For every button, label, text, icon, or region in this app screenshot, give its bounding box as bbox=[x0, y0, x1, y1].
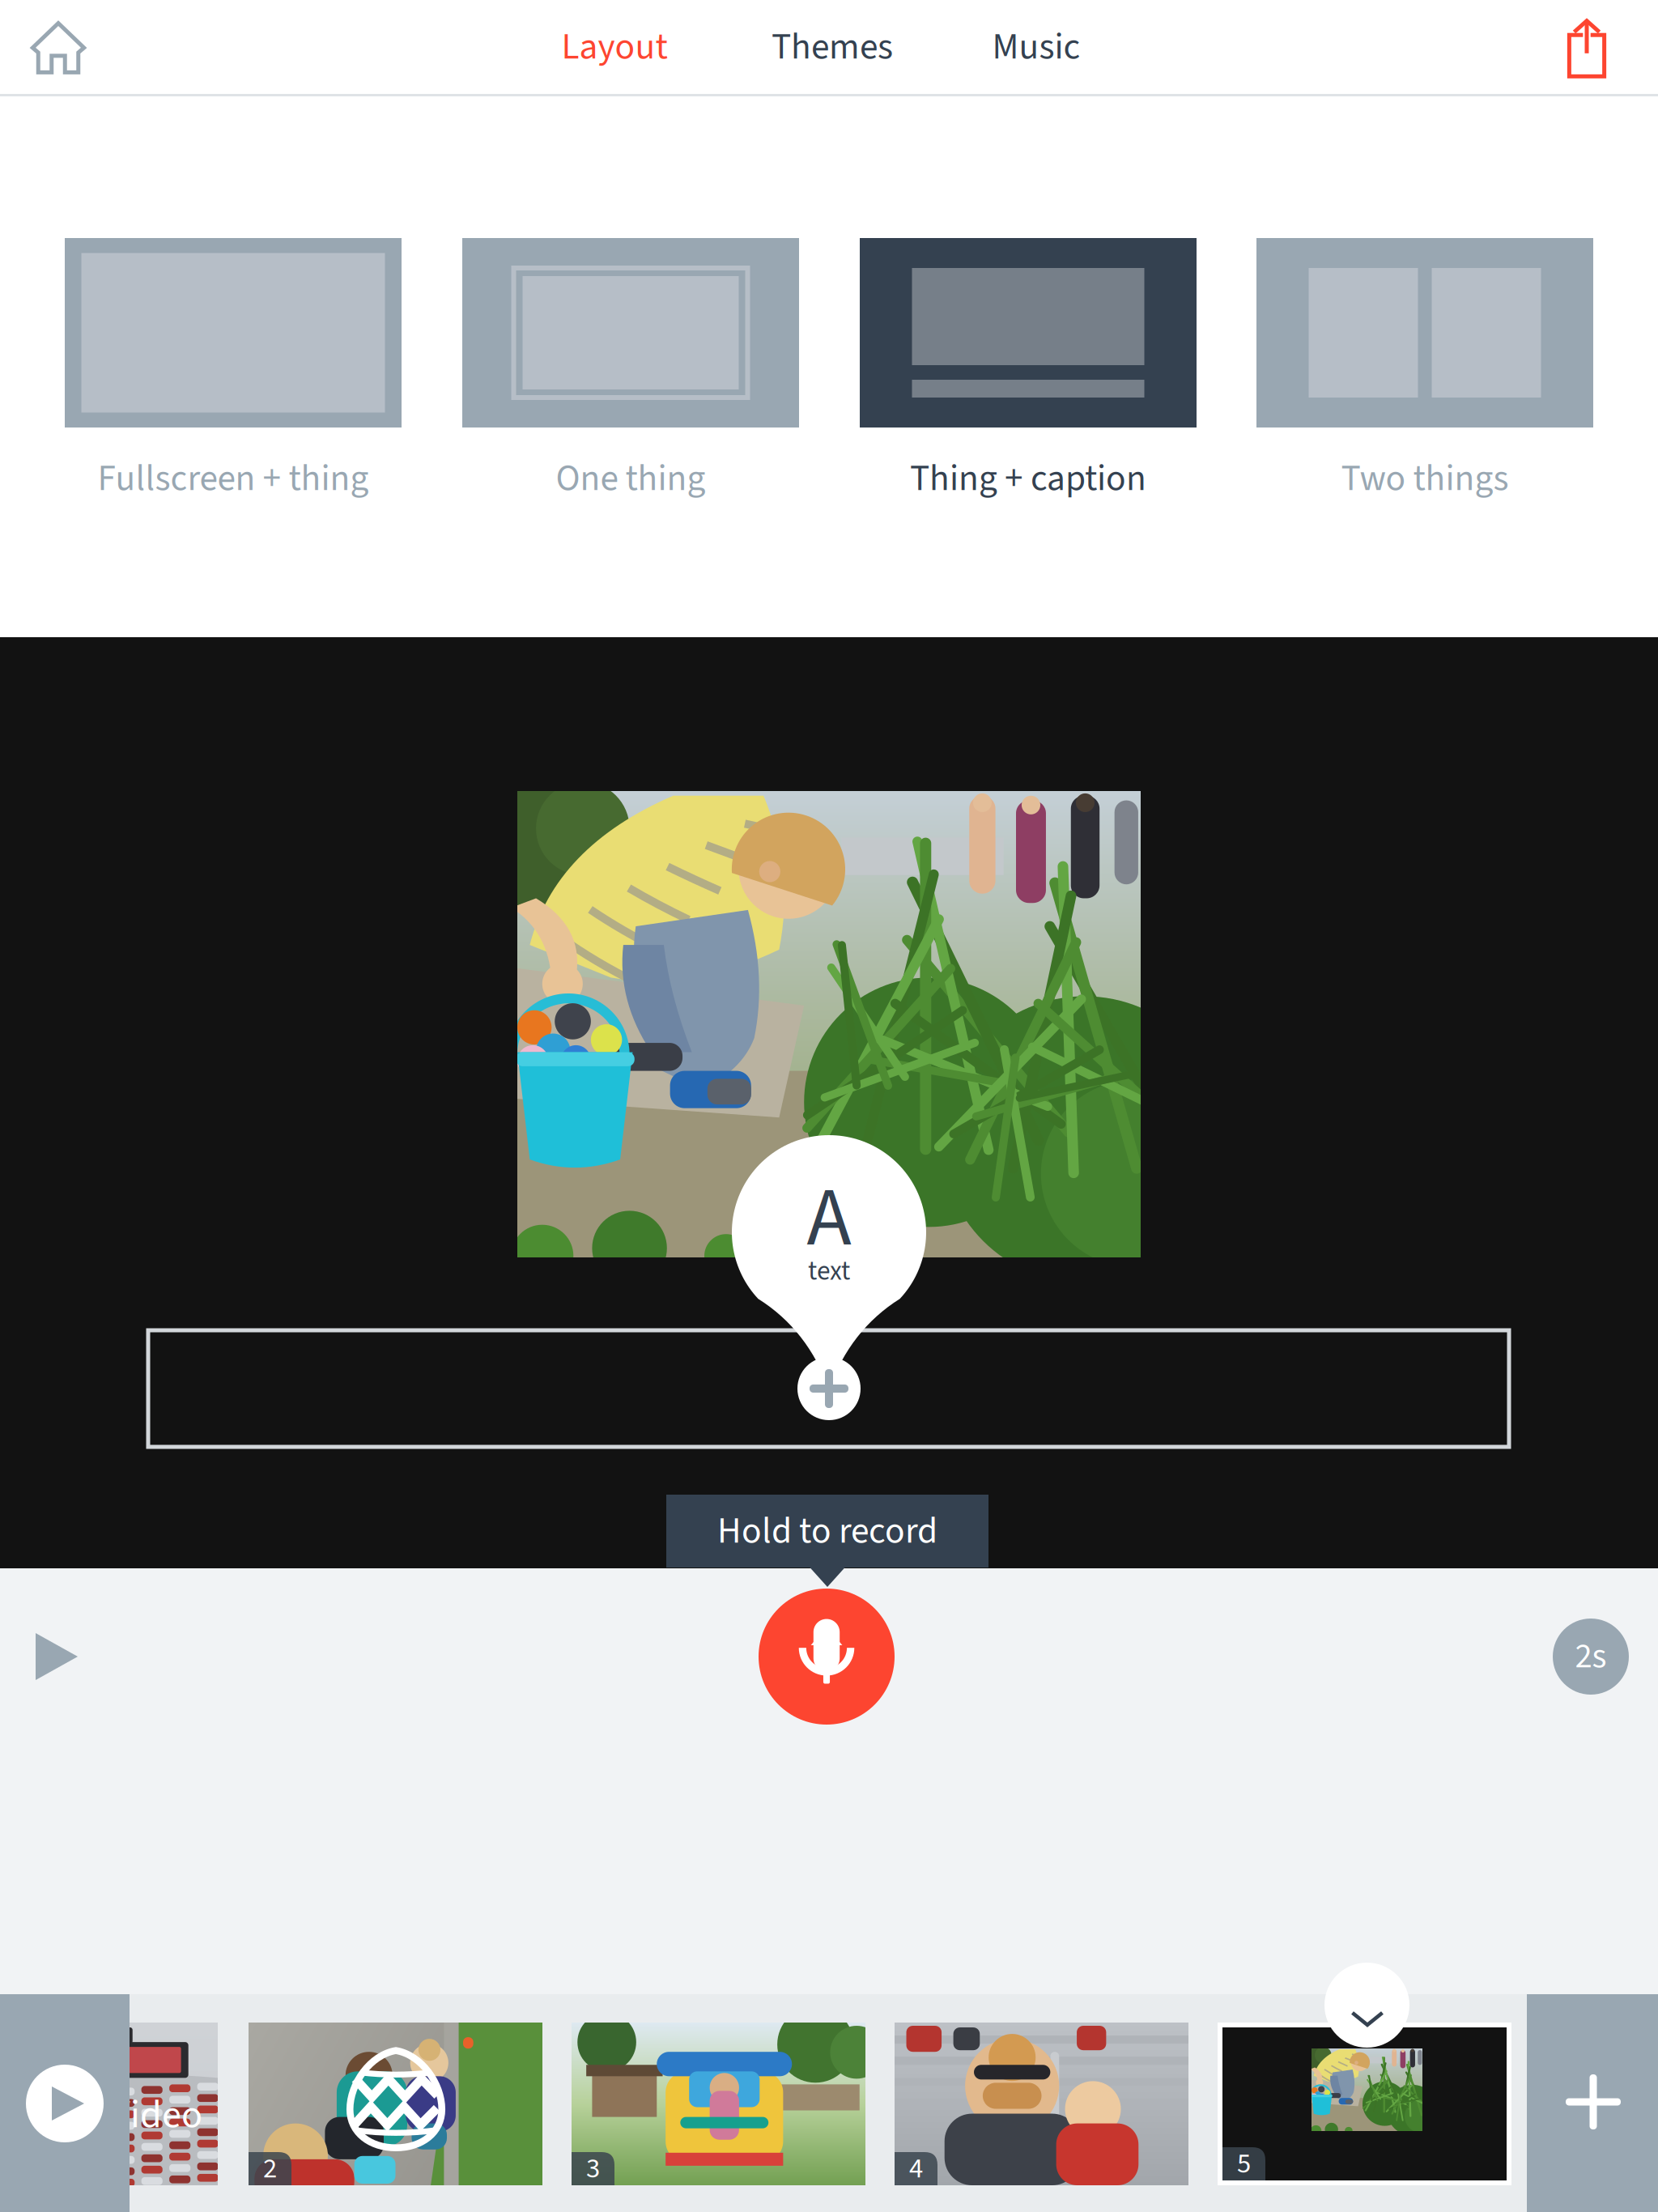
button[interactable]: Preview video bbox=[0, 1994, 130, 2212]
button[interactable]: Play narration bbox=[0, 1608, 113, 1705]
staticText: Two things bbox=[1341, 452, 1509, 505]
button[interactable]: 5 bbox=[1218, 2023, 1511, 2185]
button[interactable]: Share bbox=[1522, 2, 1652, 96]
button[interactable]: Two things bbox=[1256, 238, 1593, 507]
button[interactable]: Slide duration 2 seconds bbox=[1553, 1619, 1629, 1695]
staticText: Thing + caption bbox=[910, 452, 1146, 505]
button[interactable]: Music bbox=[947, 0, 1125, 94]
button[interactable]: A bbox=[732, 1135, 926, 1389]
button[interactable]: Add caption bbox=[797, 1357, 861, 1420]
staticText: 2s bbox=[1575, 1632, 1607, 1681]
staticText: 3 bbox=[586, 2149, 600, 2189]
button[interactable]: One thing bbox=[462, 238, 799, 507]
staticText: A bbox=[807, 1160, 851, 1277]
button[interactable]: 4 bbox=[895, 2023, 1188, 2185]
staticText: 2 bbox=[263, 2149, 277, 2189]
staticText: Layout bbox=[561, 21, 667, 73]
staticText: One thing bbox=[556, 452, 706, 505]
button[interactable]: Fullscreen + thing bbox=[65, 238, 402, 507]
staticText: text bbox=[808, 1252, 850, 1290]
staticText: Music bbox=[992, 21, 1080, 73]
button[interactable]: Record narration bbox=[759, 1589, 895, 1725]
staticText: Fullscreen + thing bbox=[98, 452, 369, 505]
button[interactable]: Add slide bbox=[1527, 1994, 1658, 2212]
staticText: Hold to record bbox=[717, 1505, 937, 1557]
button[interactable]: Video bbox=[0, 2023, 218, 2185]
button[interactable]: 2 bbox=[249, 2023, 542, 2185]
staticText: Video bbox=[110, 2087, 202, 2143]
button[interactable]: Thing + caption bbox=[860, 238, 1197, 507]
button[interactable]: Layout bbox=[513, 0, 716, 94]
staticText: 5 bbox=[1237, 2144, 1251, 2184]
staticText: Themes bbox=[772, 21, 893, 73]
button[interactable]: Home bbox=[0, 1, 123, 95]
button[interactable]: Themes bbox=[727, 0, 937, 94]
staticText: 4 bbox=[909, 2149, 923, 2189]
button[interactable]: Collapse slide list bbox=[1324, 1994, 1409, 2069]
button[interactable]: 3 bbox=[572, 2023, 865, 2185]
